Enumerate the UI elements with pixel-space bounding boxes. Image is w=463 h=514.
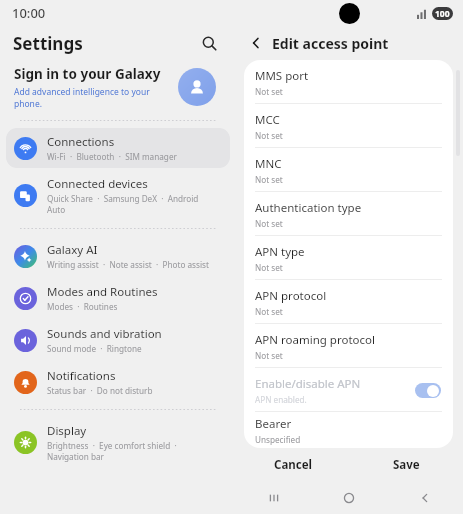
staticText: Sign in to your Galaxy [14,65,161,83]
button[interactable]: Sign in to your Galaxy [0,60,236,114]
button[interactable]: Cancel [236,448,349,482]
button[interactable]: APN roaming protocol [244,324,453,368]
staticText: Display [47,423,87,439]
button[interactable]: Back [387,482,463,514]
button[interactable]: APN protocol [244,280,453,324]
staticText: Not set [255,218,283,229]
button[interactable]: Modes and Routines [6,278,230,318]
staticText: APN enabled. [255,394,307,405]
staticText: Status bar · Do not disturb [47,385,153,396]
staticText: APN roaming protocol [255,332,375,348]
button[interactable]: Recent apps [236,482,311,514]
button[interactable]: Authentication type [244,192,453,236]
button[interactable]: Home [311,482,387,514]
button[interactable]: Save [349,448,463,482]
staticText: Connected devices [47,176,148,192]
staticText: Wi-Fi · Bluetooth · SIM manager [47,151,177,162]
staticText: Bearer [255,416,292,432]
staticText: Not set [255,86,283,97]
staticText: Quick Share · Samsung DeX · Android Auto [47,193,218,215]
button[interactable]: Display [6,417,230,468]
button[interactable]: Enable/disable APN [244,368,453,412]
staticText: MCC [255,112,280,128]
staticText: Cancel [274,457,312,473]
staticText: Save [393,457,420,473]
button[interactable]: MNC [244,148,453,192]
staticText: Sound mode · Ringtone [47,343,142,354]
staticText: Edit access point [272,34,389,53]
staticText: Writing assist · Note assist · Photo ass… [47,259,209,270]
staticText: Not set [255,350,283,361]
staticText: Not set [255,174,283,185]
staticText: Unspecified [255,434,301,445]
button[interactable]: APN type [244,236,453,280]
button[interactable]: Bearer [244,412,453,448]
staticText: MNC [255,156,282,172]
button[interactable]: MCC [244,104,453,148]
staticText: Not set [255,130,283,141]
button[interactable]: Back [245,32,267,54]
button[interactable]: Notifications [6,362,230,402]
button[interactable]: Galaxy AI [6,236,230,276]
staticText: 100 [435,8,450,20]
staticText: Authentication type [255,200,362,216]
staticText: APN protocol [255,288,327,304]
staticText: Not set [255,306,283,317]
staticText: Enable/disable APN [255,376,361,392]
staticText: Modes · Routines [47,301,118,312]
staticText: Not set [255,262,283,273]
staticText: APN type [255,244,305,260]
button[interactable]: MMS port [244,60,453,104]
button[interactable]: Enable or disable APN [415,383,441,398]
staticText: 10:00 [12,4,46,22]
staticText: Brightness · Eye comfort shield · Naviga… [47,440,218,462]
staticText: Modes and Routines [47,284,158,300]
staticText: MMS port [255,68,309,84]
staticText: Galaxy AI [47,242,98,258]
button[interactable]: Connected devices [6,170,230,221]
staticText: Connections [47,134,115,150]
staticText: Notifications [47,368,116,384]
staticText: Sounds and vibration [47,326,162,342]
button[interactable]: Search [196,30,222,56]
button[interactable]: Sounds and vibration [6,320,230,360]
staticText: Add advanced intelligence to your phone. [14,86,178,110]
staticText: Settings [13,32,83,55]
button[interactable]: Connections [6,128,230,168]
